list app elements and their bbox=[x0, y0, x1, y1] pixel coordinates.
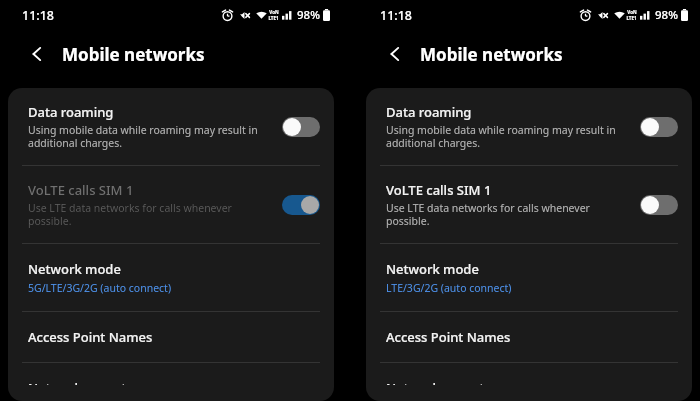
staticText: Use LTE data networks for calls whenever… bbox=[386, 201, 632, 228]
button[interactable]: Access Point Names bbox=[8, 312, 334, 362]
staticText: Mobile networks bbox=[62, 43, 205, 66]
button[interactable]: Network mode bbox=[366, 244, 692, 311]
staticText: Network mode bbox=[28, 260, 121, 278]
button[interactable]: Back bbox=[382, 41, 408, 67]
staticText: 98% bbox=[297, 7, 320, 23]
staticText: LTE1 bbox=[268, 15, 279, 21]
staticText: Data roaming bbox=[28, 103, 114, 121]
staticText: LTE1 bbox=[626, 15, 637, 21]
staticText: Use LTE data networks for calls whenever… bbox=[28, 201, 274, 228]
button[interactable]: Switch on bbox=[282, 195, 320, 215]
staticText: 98% bbox=[655, 7, 678, 23]
staticText: Network mode bbox=[386, 260, 479, 278]
staticText: 11:18 bbox=[22, 7, 55, 24]
button[interactable]: Switch off bbox=[282, 117, 320, 137]
staticText: Data roaming bbox=[386, 103, 472, 121]
staticText: VoN bbox=[627, 9, 637, 15]
button[interactable]: Network operators bbox=[8, 363, 334, 401]
staticText: Network operators bbox=[28, 379, 146, 385]
staticText: Using mobile data while roaming may resu… bbox=[28, 123, 258, 150]
button[interactable]: Switch off bbox=[640, 195, 678, 215]
button[interactable]: Switch off bbox=[640, 117, 678, 137]
button[interactable]: Network operators bbox=[366, 363, 692, 401]
staticText: VoLTE calls SIM 1 bbox=[28, 181, 134, 199]
staticText: Using mobile data while roaming may resu… bbox=[386, 123, 616, 150]
button[interactable]: Data roaming bbox=[8, 88, 334, 165]
staticText: VoLTE calls SIM 1 bbox=[386, 181, 492, 199]
staticText: Mobile networks bbox=[420, 43, 563, 66]
button[interactable]: Access Point Names bbox=[366, 312, 692, 362]
staticText: 5G/LTE/3G/2G (auto connect) bbox=[28, 281, 172, 295]
staticText: VoN bbox=[269, 9, 279, 15]
button[interactable]: Data roaming bbox=[366, 88, 692, 165]
button[interactable]: Network mode bbox=[8, 244, 334, 311]
staticText: Network operators bbox=[386, 379, 504, 385]
button[interactable]: VoLTE calls SIM 1 bbox=[366, 166, 692, 243]
staticText: LTE/3G/2G (auto connect) bbox=[386, 281, 512, 295]
button[interactable]: VoLTE calls SIM 1 bbox=[8, 166, 334, 243]
staticText: Access Point Names bbox=[386, 328, 511, 346]
staticText: 11:18 bbox=[380, 7, 413, 24]
button[interactable]: Back bbox=[24, 41, 50, 67]
staticText: Access Point Names bbox=[28, 328, 153, 346]
